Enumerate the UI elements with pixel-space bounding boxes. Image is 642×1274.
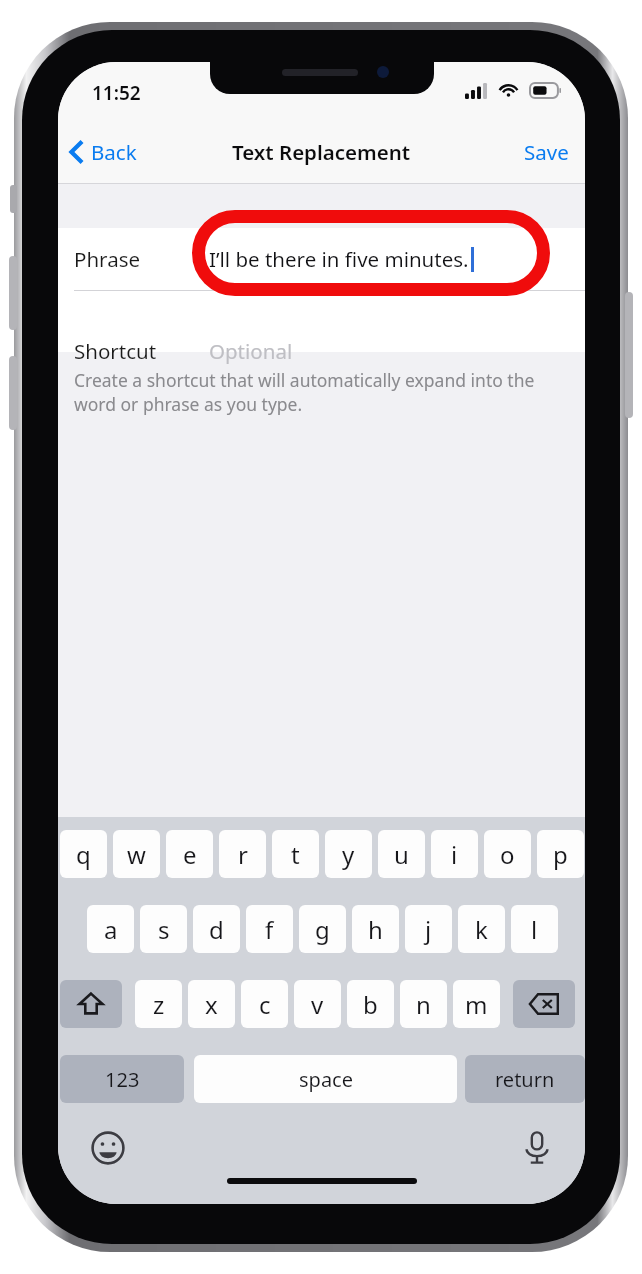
button[interactable]: i <box>431 830 478 878</box>
staticText: e <box>183 838 197 871</box>
staticText: c <box>259 988 271 1021</box>
button[interactable]: l <box>511 905 558 953</box>
staticText: a <box>104 913 118 946</box>
staticText: Text Replacement <box>232 138 411 166</box>
staticText: Optional <box>209 337 293 365</box>
button[interactable]: Emoji keyboard <box>88 1128 128 1168</box>
staticText: f <box>265 913 274 946</box>
button[interactable]: f <box>246 905 293 953</box>
button[interactable]: 123 <box>60 1055 184 1103</box>
button[interactable]: a <box>87 905 134 953</box>
staticText: 11:52 <box>92 80 141 106</box>
button[interactable]: o <box>484 830 531 878</box>
button[interactable]: x <box>188 980 235 1028</box>
button[interactable]: r <box>219 830 266 878</box>
button[interactable]: e <box>166 830 213 878</box>
button[interactable]: q <box>60 830 107 878</box>
staticText: j <box>425 913 432 946</box>
button[interactable]: g <box>299 905 346 953</box>
staticText: Back <box>91 138 137 166</box>
button[interactable]: y <box>325 830 372 878</box>
button[interactable]: d <box>193 905 240 953</box>
button[interactable]: w <box>113 830 160 878</box>
button[interactable]: Phrase <box>58 228 585 290</box>
staticText: y <box>342 838 355 871</box>
staticText: v <box>311 988 324 1021</box>
button[interactable]: p <box>537 830 584 878</box>
staticText: q <box>76 838 91 871</box>
staticText: Phrase <box>74 245 141 273</box>
button[interactable]: n <box>400 980 447 1028</box>
button[interactable]: t <box>272 830 319 878</box>
staticText: u <box>394 838 409 871</box>
staticText: I’ll be there in five minutes. <box>209 245 469 273</box>
button[interactable]: k <box>458 905 505 953</box>
staticText: space <box>299 1066 353 1093</box>
button[interactable]: v <box>294 980 341 1028</box>
button[interactable]: u <box>378 830 425 878</box>
staticText: 123 <box>105 1066 140 1093</box>
button[interactable]: s <box>140 905 187 953</box>
button[interactable]: space <box>194 1055 457 1103</box>
staticText: l <box>531 913 538 946</box>
staticText: r <box>238 838 248 871</box>
staticText: n <box>416 988 431 1021</box>
staticText: m <box>465 988 488 1021</box>
staticText: h <box>368 913 383 946</box>
staticText: k <box>475 913 488 946</box>
staticText: d <box>209 913 224 946</box>
staticText: return <box>495 1066 555 1093</box>
staticText: t <box>291 838 300 871</box>
button[interactable]: c <box>241 980 288 1028</box>
button[interactable]: b <box>347 980 394 1028</box>
staticText: i <box>451 838 458 871</box>
button[interactable]: z <box>135 980 182 1028</box>
button[interactable]: m <box>453 980 500 1028</box>
staticText: Save <box>524 138 569 166</box>
button[interactable]: j <box>405 905 452 953</box>
button[interactable]: Save <box>508 128 585 176</box>
staticText: w <box>127 838 146 871</box>
staticText: z <box>153 988 165 1021</box>
button[interactable]: Shift <box>60 980 122 1028</box>
staticText: Create a shortcut that will automaticall… <box>74 368 535 416</box>
staticText: o <box>500 838 515 871</box>
staticText: x <box>205 988 218 1021</box>
staticText: b <box>363 988 378 1021</box>
button[interactable]: return <box>465 1055 585 1103</box>
button[interactable]: Backspace <box>513 980 575 1028</box>
staticText: g <box>315 913 330 946</box>
button[interactable]: h <box>352 905 399 953</box>
button[interactable]: Back <box>66 130 141 174</box>
staticText: Shortcut <box>74 337 157 365</box>
staticText: p <box>553 838 568 871</box>
button[interactable]: Dictation <box>517 1128 557 1168</box>
staticText: s <box>158 913 170 946</box>
